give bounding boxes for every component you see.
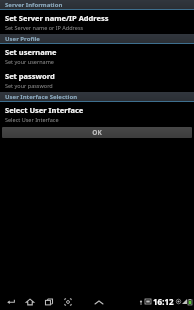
button[interactable]: OK: [2, 127, 192, 138]
staticText: 16:12: [153, 296, 174, 307]
button[interactable]: Home: [23, 295, 37, 309]
staticText: Server Information: [5, 1, 63, 9]
staticText: Set your username: [5, 58, 54, 65]
button[interactable]: Set Server name/IP Address: [0, 10, 194, 34]
button[interactable]: Recent apps: [42, 295, 56, 309]
staticText: Set your password: [5, 82, 53, 89]
button[interactable]: Screenshot: [61, 295, 75, 309]
button[interactable]: Notifications: [93, 296, 105, 308]
staticText: Select User Interface: [5, 105, 84, 115]
staticText: OK: [92, 128, 102, 137]
staticText: Select User Interface: [5, 116, 59, 123]
button[interactable]: Select User Interface: [0, 102, 194, 126]
button[interactable]: Set username: [0, 44, 194, 68]
button[interactable]: Status: [139, 296, 192, 307]
button[interactable]: Set password: [0, 68, 194, 92]
staticText: User Interface Selection: [5, 93, 78, 101]
staticText: Set Server name or IP Address: [5, 24, 84, 31]
staticText: User Profile: [5, 35, 40, 43]
button[interactable]: Back: [4, 295, 18, 309]
staticText: Set Server name/IP Address: [5, 13, 109, 23]
staticText: Set username: [5, 47, 57, 57]
staticText: Set password: [5, 71, 55, 81]
